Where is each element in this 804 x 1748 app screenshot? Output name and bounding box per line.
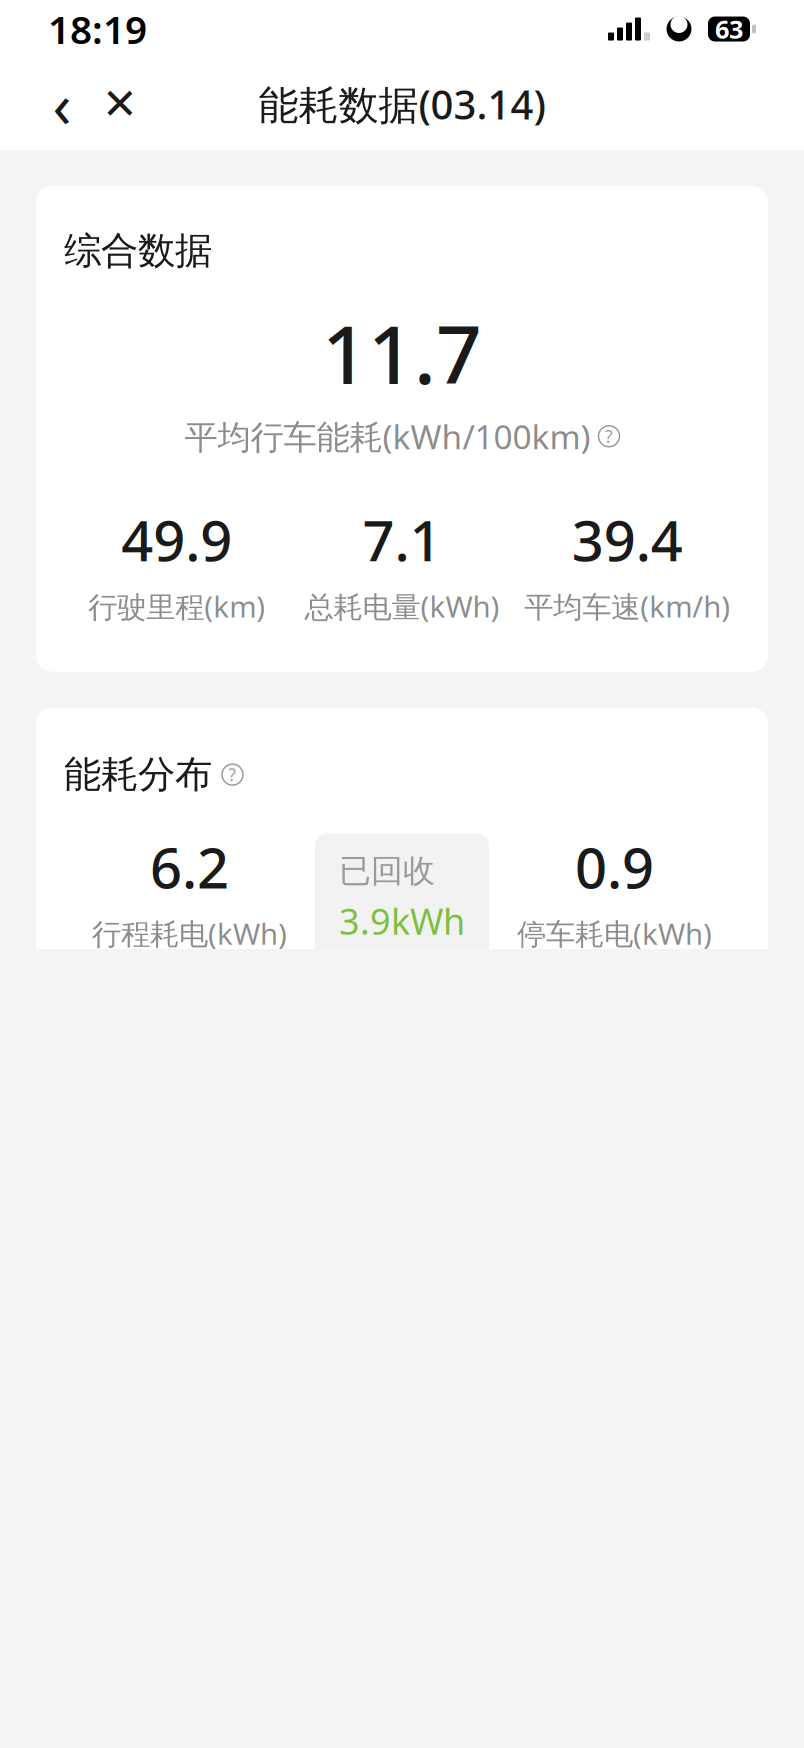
staticText: 停车耗电(kWh) — [517, 914, 712, 953]
staticText: ? — [228, 763, 236, 786]
staticText: 总耗电量(kWh) — [304, 587, 499, 626]
staticText: 49.9 — [121, 502, 232, 577]
staticText: ‹ — [52, 63, 71, 145]
staticText: 行驶里程(km) — [88, 587, 265, 626]
staticText: 行程耗电(kWh) — [92, 914, 287, 953]
staticText: 综合数据 — [64, 228, 212, 274]
staticText: 7.1 — [362, 502, 441, 577]
staticText: 0.9 — [575, 829, 654, 904]
staticText: 11.7 — [322, 300, 482, 406]
staticText: 平均行车能耗(kWh/100km) — [184, 414, 590, 458]
staticText: 6.2 — [150, 829, 229, 904]
staticText: 能耗数据(03.14) — [258, 77, 545, 130]
staticText: 能耗分布 — [64, 752, 212, 798]
staticText: ✕ — [102, 80, 138, 128]
staticText: ? — [605, 425, 613, 448]
staticText: 3.9kWh — [339, 897, 465, 945]
staticText: 63 — [715, 12, 743, 46]
button[interactable]: Back — [34, 72, 90, 136]
staticText: 39.4 — [572, 502, 683, 577]
staticText: 18:19 — [48, 3, 147, 55]
staticText: 平均车速(km/h) — [524, 587, 730, 626]
staticText: 已回收 — [339, 851, 435, 891]
button[interactable]: Close — [90, 72, 150, 136]
